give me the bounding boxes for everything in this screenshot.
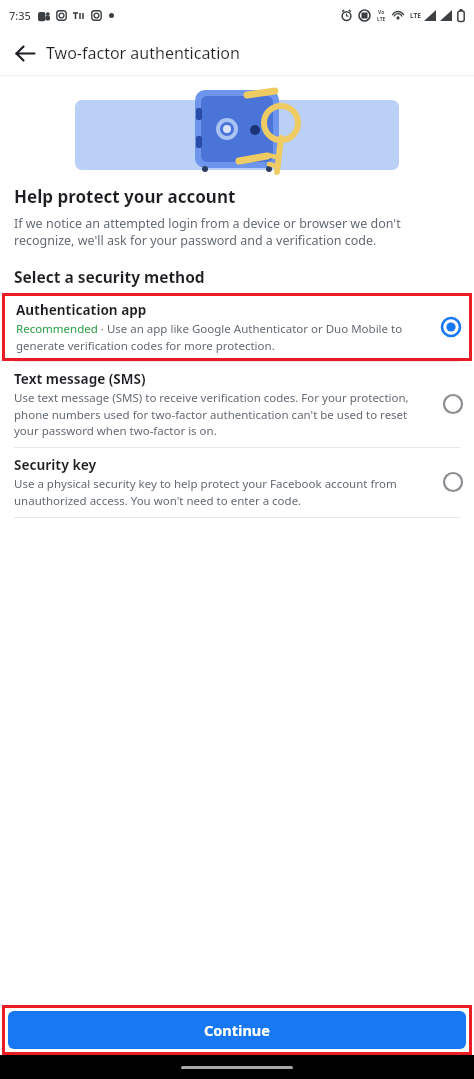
staticText: Select a security method [14,266,205,287]
staticText: Text message (SMS) [14,370,146,388]
button[interactable]: Text message (SMS) [0,362,474,447]
staticText: LTE [410,11,421,20]
staticText: Help protect your account [14,185,236,208]
button[interactable]: Select option [442,393,464,415]
staticText: Use a physical security key to help prot… [14,476,432,508]
button[interactable]: Back [8,36,42,70]
button[interactable]: Authentication app [2,293,472,361]
staticText: Two-factor authentication [46,42,240,64]
button[interactable]: Select option [442,471,464,493]
staticText: 7:35 [9,8,31,23]
staticText: Continue [204,1020,270,1040]
staticText: If we notice an attempted login from a d… [14,215,458,249]
staticText: LTE [377,16,386,23]
staticText: Security key [14,456,97,474]
staticText: Vo [378,9,385,16]
staticText: Recommended · Use an app like Google Aut… [16,321,430,353]
staticText: Authentication app [16,301,147,319]
staticText: Use text message (SMS) to receive verifi… [14,390,432,438]
button[interactable]: Continue [8,1011,466,1049]
button[interactable]: Selected option [440,316,462,338]
button[interactable]: Security key [0,448,474,517]
